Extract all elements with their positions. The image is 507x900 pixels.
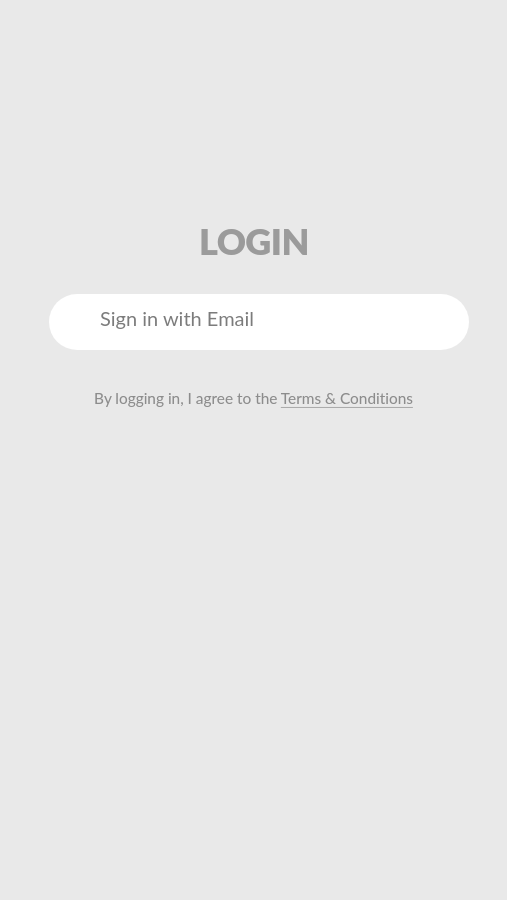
- button[interactable]: Terms and Conditions: [94, 389, 413, 407]
- staticText: LOGIN: [199, 219, 309, 262]
- staticText: By logging in, I agree to the Terms & Co…: [94, 389, 413, 407]
- staticText: Sign in with Email: [100, 306, 255, 330]
- button[interactable]: Sign in with Email: [49, 294, 469, 350]
